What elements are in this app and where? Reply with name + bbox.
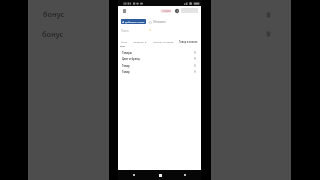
staticText: Продано, ₽ — [133, 40, 147, 43]
other: Delete — [266, 31, 271, 37]
staticText: Цвет и бренд — [122, 57, 140, 61]
staticText: Товары — [122, 51, 132, 55]
staticText: бонус — [43, 9, 65, 19]
button[interactable]: Товар — [118, 62, 201, 69]
button[interactable]: скидки — [160, 9, 172, 13]
button[interactable]: Home — [151, 170, 169, 180]
button[interactable]: Menu — [123, 9, 126, 13]
staticText: бонус — [42, 29, 64, 39]
staticText: Товар — [122, 64, 130, 68]
button[interactable]: Back — [125, 170, 143, 180]
staticText: Отзывы о товаре — [153, 40, 174, 43]
button[interactable]: Recents — [176, 170, 194, 180]
staticText: Обновить — [153, 20, 166, 24]
button[interactable]: Обновить — [149, 20, 166, 24]
staticText: Товар в заказе — [179, 40, 198, 43]
staticText: скидки — [162, 9, 171, 13]
button[interactable]: Товар — [118, 68, 201, 75]
button[interactable]: Товары — [118, 49, 201, 56]
staticText: Товар — [122, 70, 130, 74]
other: Delete — [266, 12, 271, 18]
staticText: Добавить товар — [125, 20, 145, 23]
staticText: Фото — [121, 40, 128, 43]
button[interactable]: Цвет и бренд — [118, 55, 201, 62]
button[interactable]: Account — [175, 9, 179, 13]
button[interactable]: Поиск — [121, 29, 129, 33]
button[interactable]: Добавить товар — [121, 19, 146, 24]
